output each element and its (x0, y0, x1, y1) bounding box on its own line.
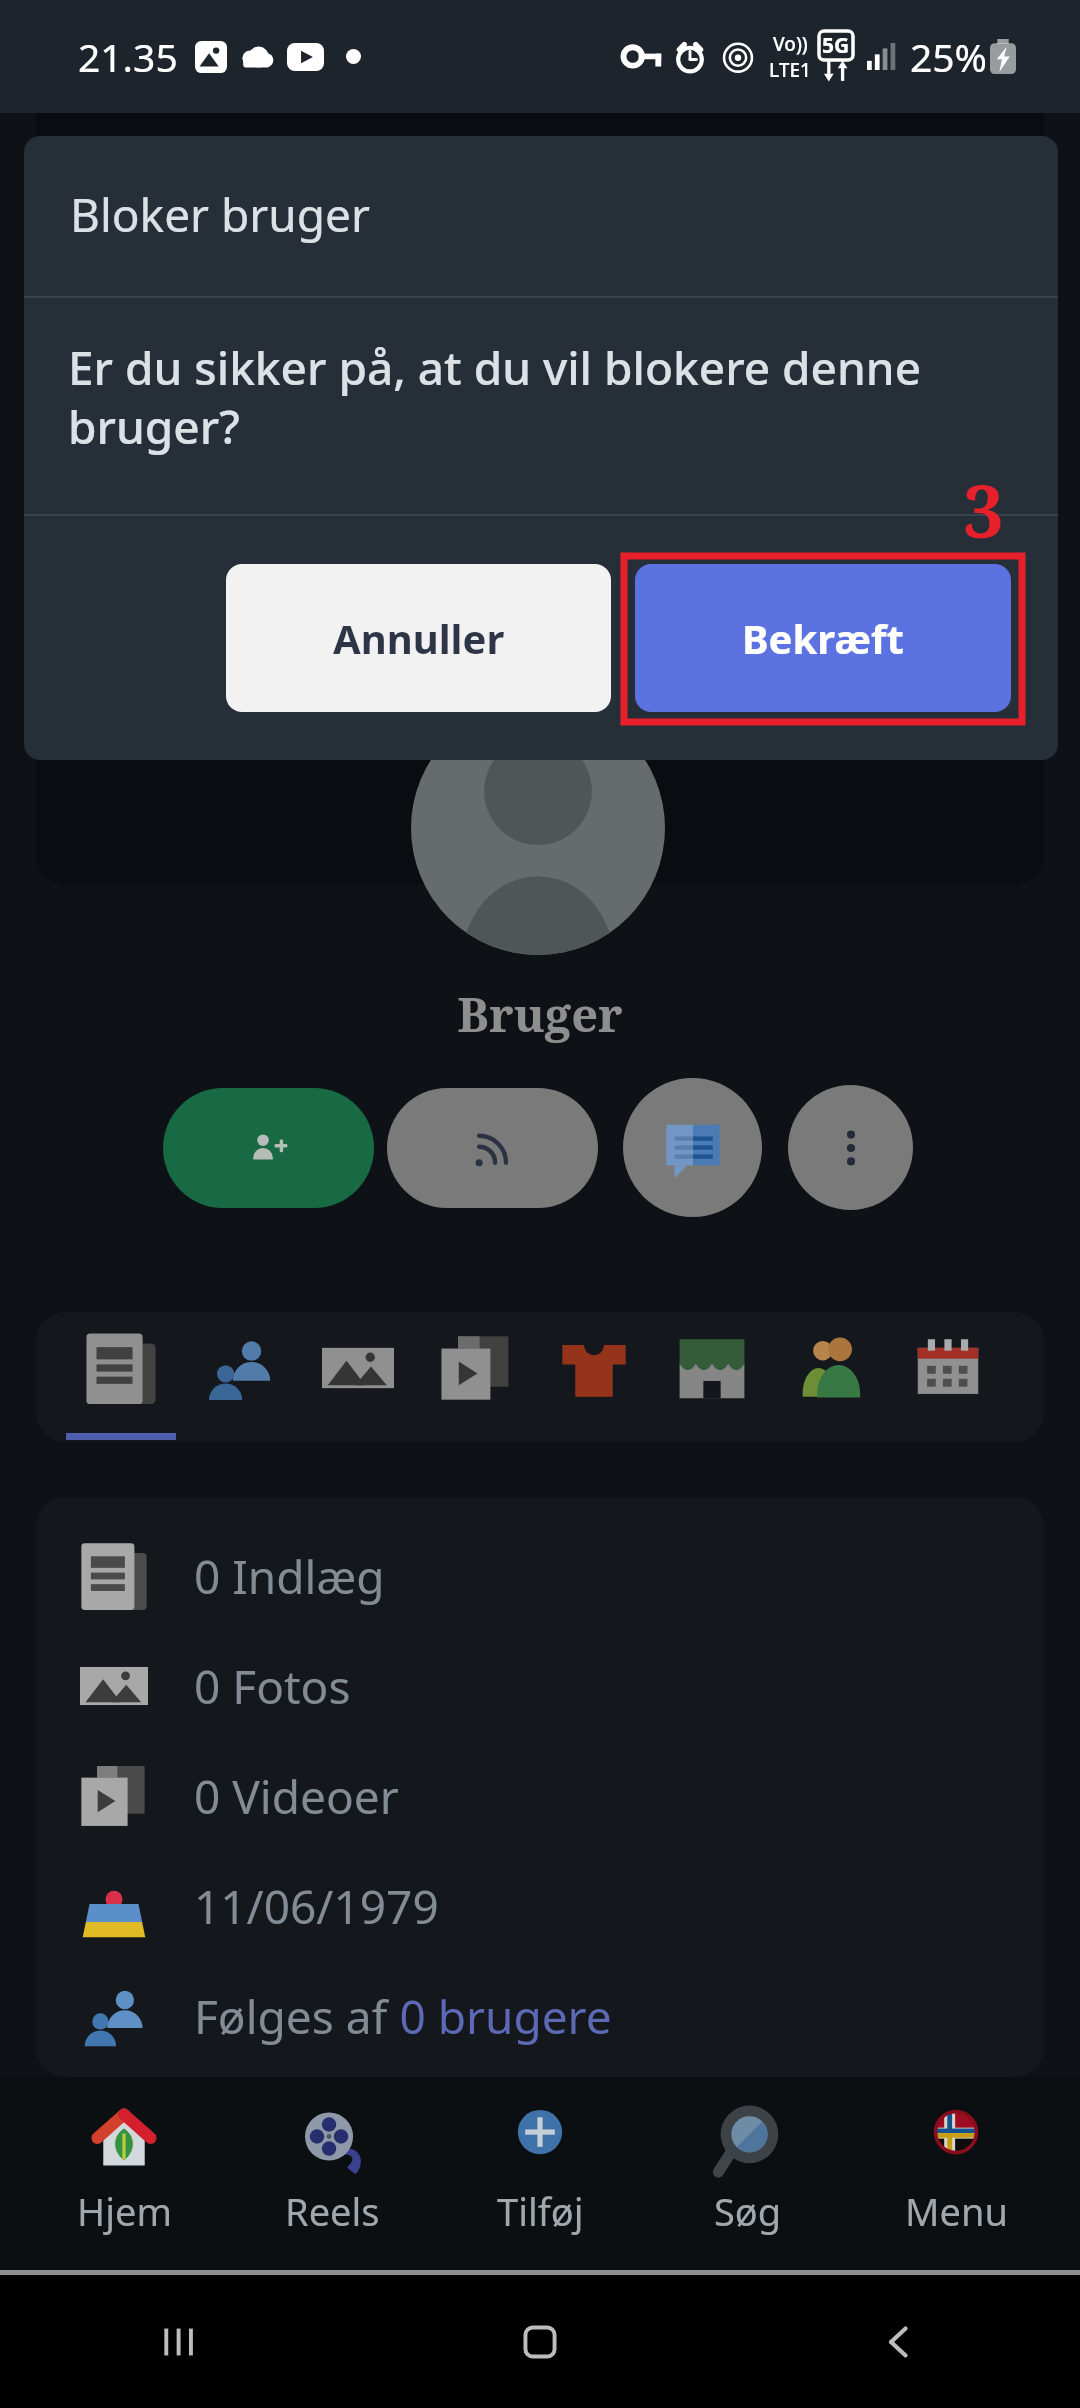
staticText: Bekræft (742, 611, 904, 665)
button[interactable]: Videos tab (417, 1312, 535, 1442)
staticText: Tilføj (497, 2185, 584, 2237)
staticText: Reels (285, 2185, 380, 2237)
staticText: 5G (822, 31, 850, 60)
staticText: 11/06/1979 (194, 1875, 439, 1938)
button[interactable]: Menu (852, 2077, 1060, 2270)
button[interactable]: Friends tab (180, 1312, 299, 1442)
button[interactable]: Følges af 0 brugere (36, 1961, 1044, 2071)
staticText: Bruger (0, 982, 1080, 1046)
button[interactable]: Messages (623, 1078, 762, 1217)
staticText: 25% (910, 30, 988, 83)
staticText: Bloker bruger (70, 183, 371, 246)
button[interactable]: Back (872, 2314, 928, 2370)
staticText: 0 Indlæg (194, 1545, 385, 1608)
staticText: Annuller (333, 611, 505, 665)
button[interactable]: Groups tab (771, 1312, 889, 1442)
button[interactable]: Follow user (163, 1088, 374, 1208)
button[interactable]: Recents (152, 2314, 208, 2370)
button[interactable]: Søg (644, 2077, 852, 2270)
button[interactable]: Annuller (226, 564, 611, 712)
button[interactable]: Bekræft (635, 564, 1011, 712)
button[interactable]: Hjem (20, 2077, 228, 2270)
button[interactable] (411, 701, 665, 955)
button[interactable]: Reels (228, 2077, 436, 2270)
staticText: 3 (963, 461, 1004, 559)
staticText: 0 Videoer (194, 1765, 399, 1828)
button[interactable]: Home (512, 2314, 568, 2370)
button[interactable]: Posts tab (61, 1312, 180, 1442)
staticText: Er du sikker på, at du vil blokere denne… (68, 336, 988, 457)
button[interactable]: Subscribe feed (387, 1088, 598, 1208)
button[interactable]: 11/06/1979 (36, 1851, 1044, 1961)
staticText: Hjem (77, 2185, 172, 2237)
button[interactable]: 0 Indlæg (36, 1521, 1044, 1631)
staticText: Følges af 0 brugere (194, 1985, 612, 2048)
button[interactable]: Events tab (889, 1312, 1007, 1442)
button[interactable]: Clothing tab (535, 1312, 653, 1442)
button[interactable]: Marketplace tab (653, 1312, 771, 1442)
button[interactable]: Photos tab (299, 1312, 417, 1442)
staticText: 0 Fotos (194, 1655, 351, 1718)
staticText: Søg (714, 2185, 782, 2237)
staticText: LTE1 (769, 57, 811, 83)
button[interactable]: 0 Fotos (36, 1631, 1044, 1741)
button[interactable]: 0 Videoer (36, 1741, 1044, 1851)
staticText: Vo)) (773, 31, 808, 57)
staticText: 21.35 (78, 30, 178, 83)
staticText: Menu (905, 2185, 1008, 2237)
button[interactable]: Tilføj (436, 2077, 644, 2270)
button[interactable]: More options (788, 1085, 913, 1210)
